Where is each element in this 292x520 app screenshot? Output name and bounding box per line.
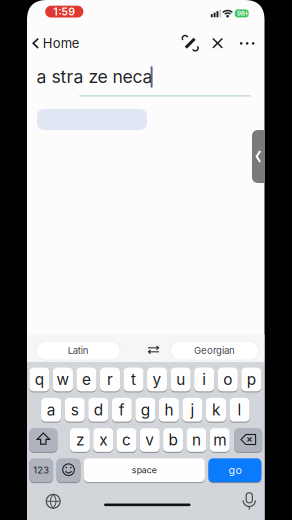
staticText: g — [141, 400, 150, 419]
button[interactable] — [181, 34, 199, 52]
staticText: v — [145, 431, 154, 449]
button[interactable]: e — [76, 367, 96, 392]
button[interactable]: s — [65, 397, 85, 422]
staticText: r — [107, 370, 113, 389]
button[interactable]: v — [140, 428, 160, 452]
button[interactable] — [252, 130, 264, 183]
button[interactable]: a — [41, 397, 61, 422]
button[interactable] — [239, 41, 256, 46]
staticText: b — [169, 431, 178, 449]
staticText: a — [47, 400, 56, 419]
button[interactable] — [240, 492, 258, 510]
button[interactable]: d — [88, 397, 108, 422]
button[interactable] — [234, 428, 262, 452]
staticText: q — [35, 370, 44, 389]
button[interactable]: j — [182, 397, 202, 422]
button[interactable]: m — [210, 428, 230, 452]
button[interactable]: y — [147, 367, 167, 392]
button[interactable]: c — [116, 428, 136, 452]
staticText: j — [190, 400, 194, 419]
button[interactable] — [211, 37, 224, 49]
button[interactable] — [147, 345, 160, 354]
button[interactable]: l — [229, 397, 250, 422]
button[interactable]: x — [93, 428, 113, 452]
staticText: l — [238, 400, 242, 419]
staticText: m — [213, 431, 226, 449]
staticText: s — [71, 400, 79, 419]
button[interactable]: z — [70, 428, 90, 452]
button[interactable]: i — [194, 367, 214, 392]
button[interactable]: g — [135, 397, 155, 422]
button[interactable]: o — [218, 367, 238, 392]
staticText: a stra ze neca — [36, 66, 152, 87]
staticText: Home — [43, 35, 80, 51]
button[interactable] — [57, 458, 80, 483]
staticText: 123 — [33, 465, 49, 476]
staticText: y — [153, 370, 162, 389]
staticText: c — [122, 431, 131, 449]
button[interactable]: 1:59 — [45, 6, 83, 17]
button[interactable]: b — [163, 428, 183, 452]
staticText: space — [132, 465, 157, 475]
staticText: n — [192, 431, 201, 449]
staticText: i — [202, 370, 206, 389]
staticText: u — [176, 370, 185, 389]
button[interactable]: w — [53, 367, 73, 392]
button[interactable]: space — [84, 458, 205, 483]
staticText: e — [82, 370, 91, 389]
button[interactable]: h — [159, 397, 179, 422]
staticText: Latin — [68, 345, 89, 356]
staticText: o — [223, 370, 232, 389]
button[interactable]: r — [100, 367, 120, 392]
button[interactable]: go — [208, 458, 261, 483]
staticText: w — [56, 370, 69, 389]
button[interactable]: k — [206, 397, 226, 422]
button[interactable]: q — [29, 367, 49, 392]
staticText: f — [119, 400, 125, 419]
button[interactable]: t — [123, 367, 144, 392]
staticText: Georgian — [194, 345, 235, 356]
button[interactable] — [45, 493, 61, 509]
staticText: h — [164, 400, 173, 419]
staticText: k — [212, 400, 220, 419]
staticText: 1:59 — [53, 5, 75, 18]
staticText: x — [99, 431, 107, 449]
staticText: p — [247, 370, 256, 389]
button[interactable]: Home — [32, 33, 80, 53]
button[interactable] — [29, 428, 57, 452]
button[interactable]: n — [186, 428, 206, 452]
button[interactable]: f — [112, 397, 132, 422]
staticText: go — [228, 464, 241, 477]
staticText: 98 — [237, 9, 245, 17]
staticText: d — [94, 400, 103, 419]
button[interactable]: Latin — [36, 340, 120, 360]
button[interactable]: u — [171, 367, 191, 392]
button[interactable]: p — [241, 367, 261, 392]
staticText: t — [131, 370, 136, 389]
staticText: z — [76, 431, 84, 449]
button[interactable]: Georgian — [170, 340, 259, 360]
button[interactable]: 123 — [29, 458, 53, 483]
